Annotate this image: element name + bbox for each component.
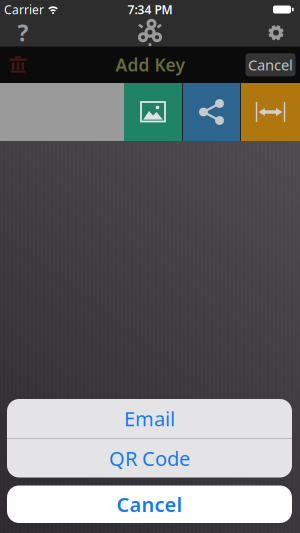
button[interactable]: Cancel [7, 485, 292, 523]
staticText: Cancel [248, 55, 293, 74]
staticText: QR Code [109, 445, 190, 472]
button[interactable]: QR Code [7, 439, 292, 477]
button[interactable]: Email [7, 399, 292, 438]
button[interactable]: Share [183, 83, 240, 141]
button[interactable]: Choose Image [124, 83, 182, 141]
staticText: 7:34 PM [127, 1, 172, 17]
staticText: Carrier [4, 1, 44, 17]
staticText: Cancel [116, 491, 182, 518]
button[interactable]: Resize [241, 83, 300, 141]
button[interactable]: Settings [256, 19, 296, 46]
button[interactable]: Delete [1, 50, 35, 80]
staticText: ? [17, 18, 28, 48]
button[interactable]: Help [6, 19, 40, 46]
button[interactable]: Cancel [245, 53, 295, 76]
staticText: Email [124, 405, 175, 432]
staticText: Add Key [115, 53, 184, 76]
